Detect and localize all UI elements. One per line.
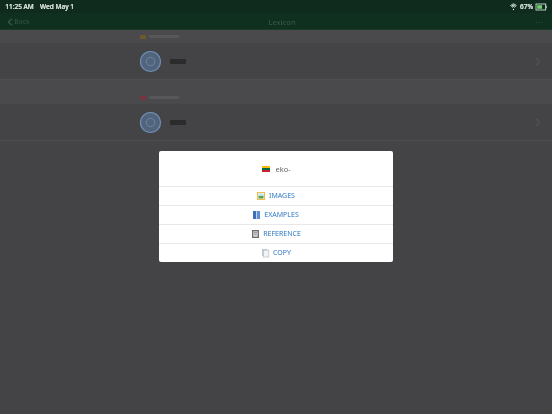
staticText: EXAMPLES (264, 210, 299, 220)
staticText: ⋯ (535, 18, 543, 27)
button[interactable]: IMAGES (159, 187, 393, 205)
staticText: Back (14, 17, 30, 27)
button[interactable]: EXAMPLES (159, 206, 393, 224)
button[interactable]: REFERENCE (159, 225, 393, 243)
staticText: eko- (275, 164, 291, 174)
staticText: 67% (520, 2, 533, 11)
staticText: Wed May 1 (40, 2, 74, 11)
staticText: Lexicon (268, 17, 296, 27)
staticText: REFERENCE (263, 229, 301, 239)
staticText: 11:25 AM (5, 2, 34, 11)
button[interactable]: COPY (159, 244, 393, 262)
staticText: COPY (273, 248, 291, 258)
button[interactable] (0, 104, 552, 140)
staticText: IMAGES (269, 191, 295, 201)
button[interactable]: More options (532, 15, 546, 29)
button[interactable]: Back (6, 15, 32, 29)
button[interactable] (0, 43, 552, 79)
